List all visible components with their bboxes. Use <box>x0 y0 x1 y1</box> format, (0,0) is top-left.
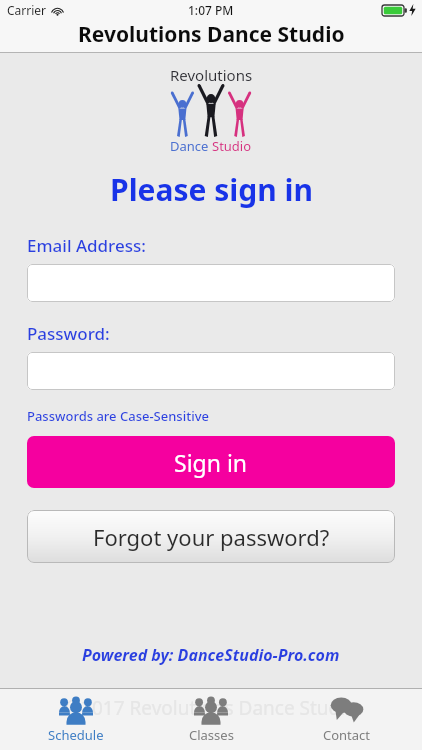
staticText: Contact <box>323 726 371 744</box>
staticText: Password: <box>27 322 110 345</box>
staticText: Powered by: DanceStudio-Pro.com <box>82 644 340 666</box>
staticText: 1:07 PM <box>188 2 234 18</box>
staticText: Sign in <box>174 447 248 478</box>
staticText: Forgot your password? <box>93 522 330 552</box>
button[interactable]: Contact <box>287 696 407 744</box>
staticText: ©2017 Revolutions Dance Studio <box>65 695 357 721</box>
staticText: Please sign in <box>110 169 313 210</box>
button[interactable]: Classes <box>151 696 271 744</box>
button[interactable] <box>27 352 395 390</box>
staticText: Carrier <box>7 2 47 18</box>
staticText: Passwords are Case-Sensitive <box>27 407 209 425</box>
staticText: Revolutions <box>170 65 253 85</box>
button[interactable]: Forgot your password? <box>27 510 395 563</box>
staticText: Studio <box>212 137 252 155</box>
staticText: Schedule <box>48 726 104 744</box>
staticText: Classes <box>189 726 234 744</box>
button[interactable] <box>27 264 395 302</box>
button[interactable]: Schedule <box>16 696 136 744</box>
staticText: Email Address: <box>27 234 146 257</box>
button[interactable]: Sign in <box>27 436 395 488</box>
staticText: Revolutions Dance Studio <box>78 20 345 48</box>
staticText: Dance <box>170 137 212 155</box>
